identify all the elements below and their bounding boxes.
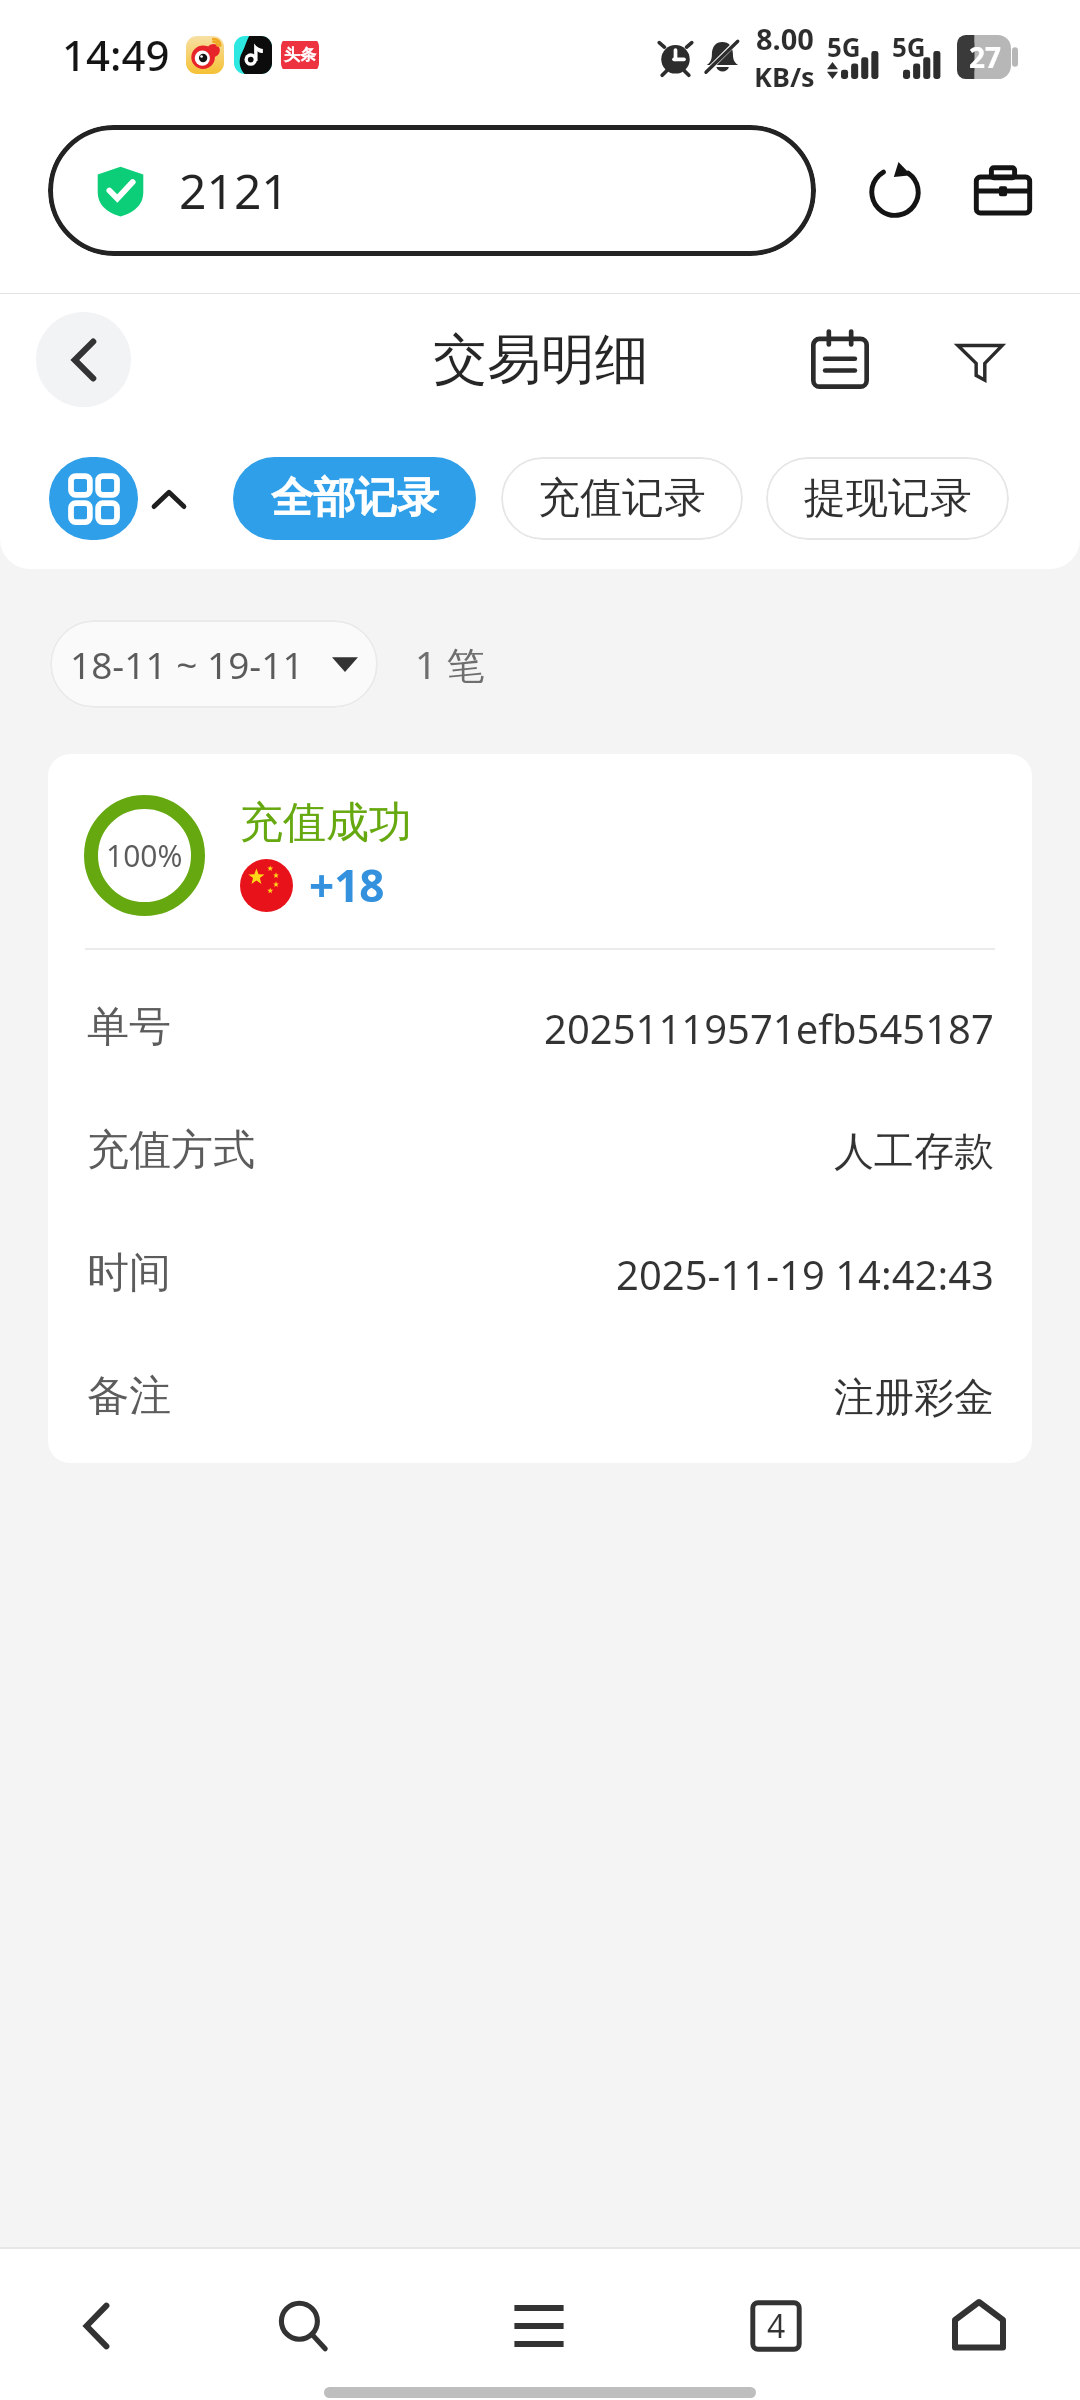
button[interactable]: 2121 — [48, 125, 816, 256]
staticText: 5G — [892, 29, 926, 64]
staticText: 2121 — [179, 158, 289, 223]
staticText: 18-11 ~ 19-11 — [70, 639, 304, 689]
staticText: 14:49 — [62, 26, 170, 83]
button[interactable]: Back — [36, 312, 131, 407]
staticText: 头条 — [284, 45, 316, 65]
staticText: 人工存款 — [834, 1126, 994, 1176]
button[interactable]: Back — [0, 2250, 216, 2400]
button[interactable]: Refresh — [843, 139, 947, 243]
staticText: 20251119571efb545187 — [544, 1001, 994, 1055]
staticText: 充值记录 — [538, 472, 706, 525]
staticText: KB/s — [754, 58, 815, 95]
staticText: 备注 — [87, 1370, 171, 1423]
staticText: 充值成功 — [240, 796, 412, 850]
staticText: +18 — [309, 855, 385, 915]
staticText: 100% — [106, 835, 183, 876]
staticText: 注册彩金 — [834, 1372, 994, 1422]
button[interactable]: 18-11 ~ 19-11 — [50, 620, 378, 708]
button[interactable]: Grid view — [49, 457, 138, 540]
button[interactable]: 充值记录 — [501, 457, 743, 540]
button[interactable]: Calendar — [793, 313, 887, 407]
button[interactable]: Menu — [432, 2250, 648, 2400]
staticText: 5G — [827, 29, 861, 64]
staticText: 充值方式 — [87, 1124, 255, 1177]
button[interactable]: Search — [216, 2250, 432, 2400]
staticText: 27 — [969, 38, 1002, 76]
button[interactable]: Toolbox — [951, 139, 1055, 243]
button[interactable]: 提现记录 — [766, 457, 1009, 540]
staticText: 全部记录 — [271, 472, 439, 525]
staticText: 4 — [767, 2304, 786, 2348]
staticText: 2025-11-19 14:42:43 — [616, 1247, 994, 1301]
button[interactable]: Home — [864, 2250, 1080, 2400]
button[interactable]: Tabs, 4 open — [648, 2250, 864, 2400]
staticText: 8.00 — [756, 19, 814, 58]
button[interactable]: 全部记录 — [233, 457, 476, 540]
staticText: 提现记录 — [804, 472, 972, 525]
staticText: 1 笔 — [415, 638, 485, 690]
button[interactable]: 100% — [48, 754, 1032, 1463]
staticText: 单号 — [87, 1001, 171, 1054]
button[interactable]: Filter — [933, 313, 1027, 407]
staticText: 时间 — [87, 1247, 171, 1300]
staticText: 交易明细 — [433, 326, 649, 394]
